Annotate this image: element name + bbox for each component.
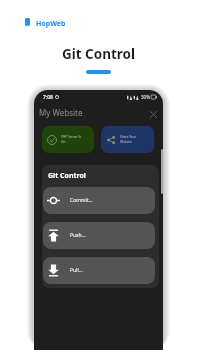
staticText: Commit... — [70, 197, 93, 204]
staticText: 7:08 — [43, 94, 53, 101]
staticText: Pull... — [70, 267, 83, 274]
staticText: HopWeb — [36, 19, 66, 29]
button[interactable]: Close — [149, 110, 158, 119]
button[interactable]: Pull... — [43, 257, 155, 284]
staticText: Share Your Website — [120, 135, 137, 144]
staticText: Git Control — [48, 171, 86, 181]
staticText: 30% — [141, 94, 150, 100]
staticText: Push... — [70, 232, 86, 239]
button[interactable]: HopWeb — [25, 18, 66, 29]
button[interactable]: Push... — [43, 222, 155, 249]
button[interactable]: PHP Server Is On — [42, 126, 94, 153]
button[interactable]: Commit... — [43, 187, 155, 214]
staticText: PHP Server Is On — [61, 135, 82, 144]
staticText: Git Control — [0, 45, 197, 63]
staticText: My Website — [39, 107, 83, 118]
button[interactable]: Share Your Website — [101, 126, 154, 153]
